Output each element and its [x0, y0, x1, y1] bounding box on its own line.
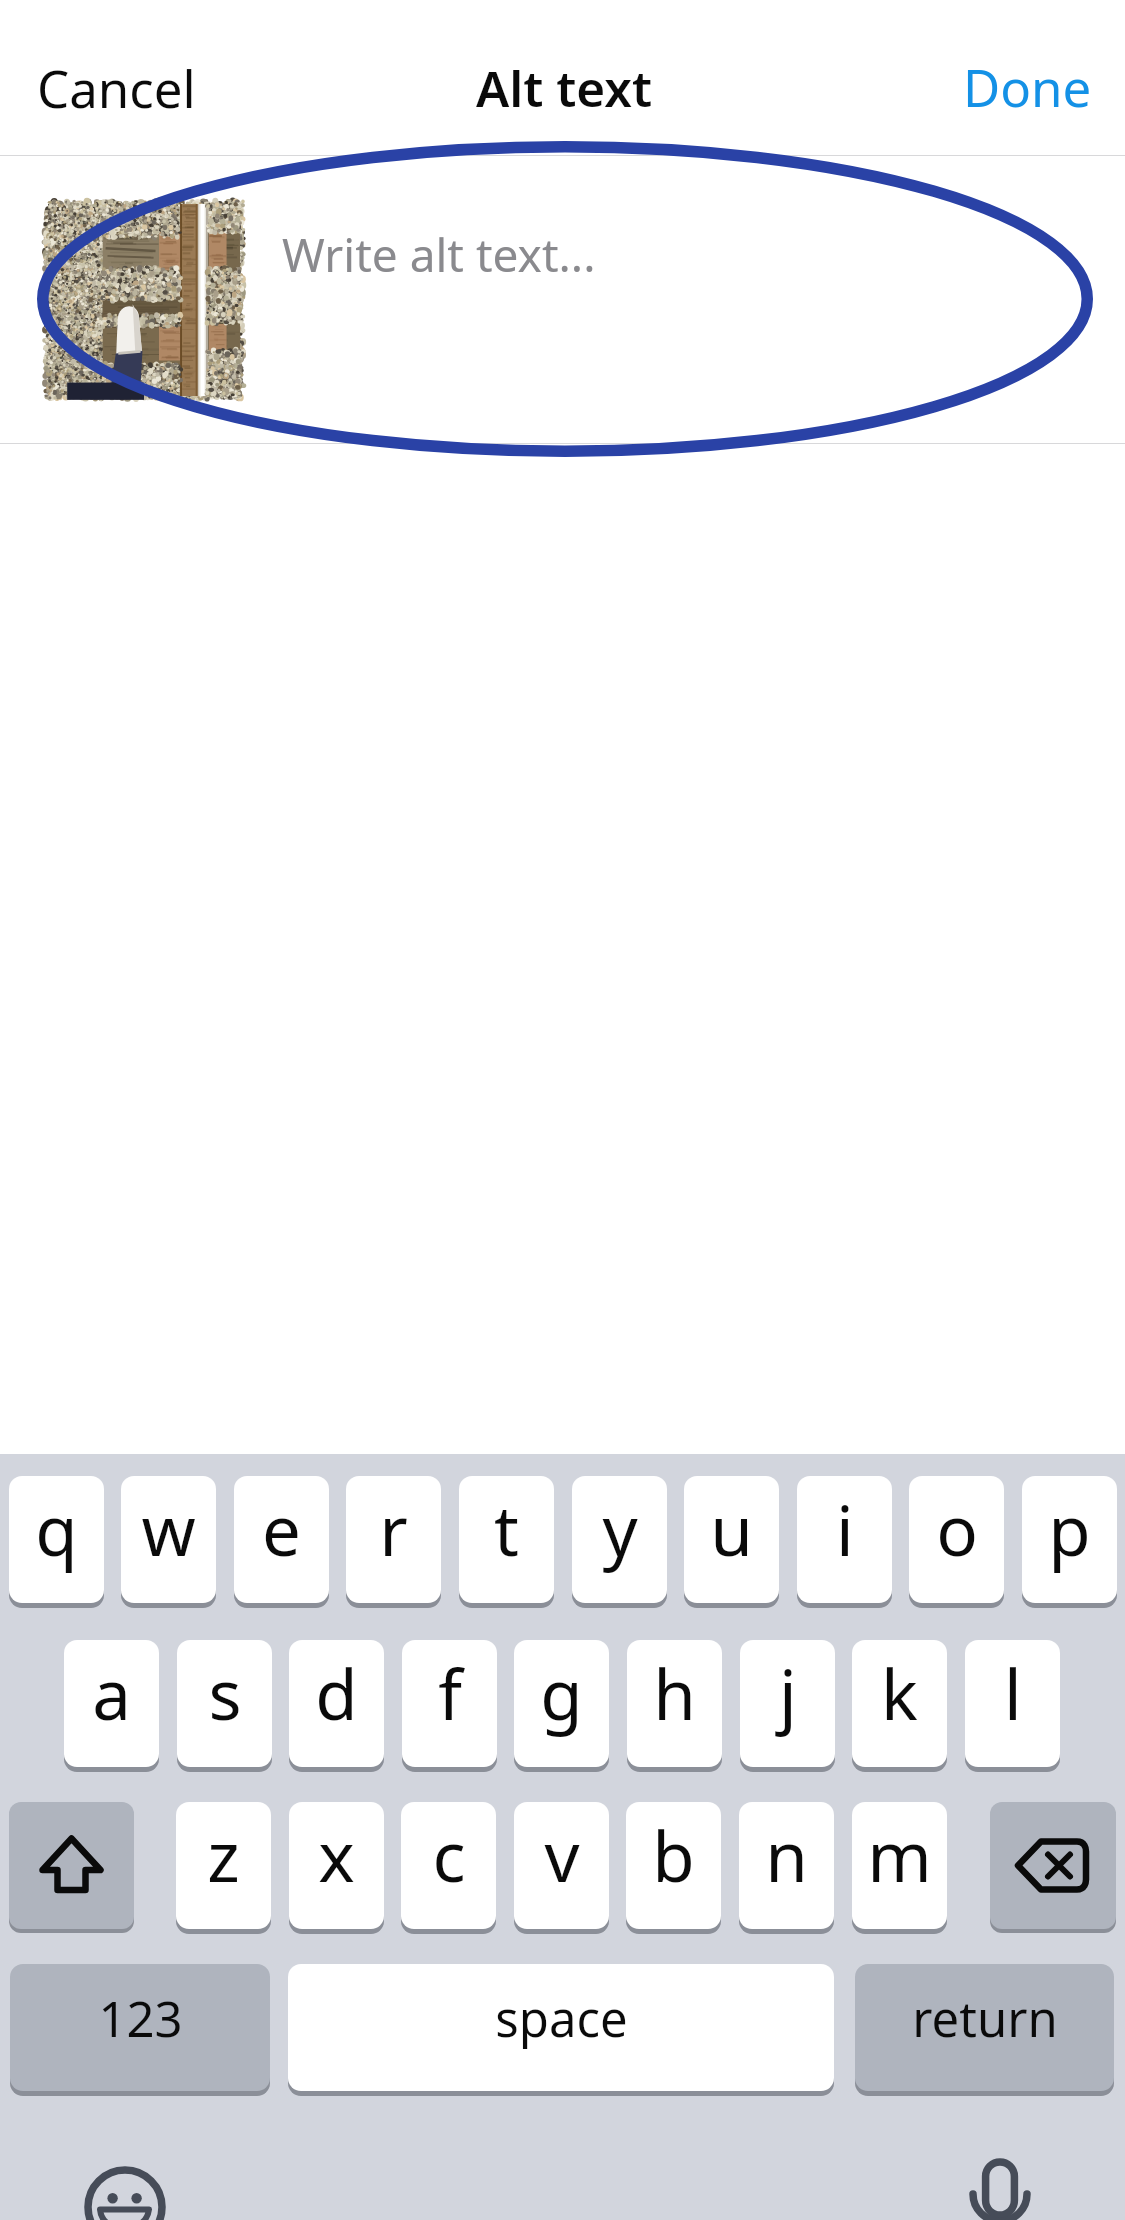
button[interactable]: Delete — [990, 1802, 1116, 1933]
button[interactable]: n — [739, 1802, 834, 1934]
staticText: Write alt text... — [282, 223, 596, 286]
staticText: m — [867, 1808, 932, 1902]
button[interactable]: Cancel — [0, 11, 239, 144]
staticText: q — [35, 1482, 78, 1576]
button[interactable]: w — [121, 1476, 216, 1608]
staticText: z — [207, 1808, 240, 1902]
button[interactable]: Selected photo — [48, 204, 240, 396]
button[interactable]: k — [852, 1640, 947, 1772]
button[interactable]: Emoji keyboard — [60, 2142, 190, 2220]
staticText: k — [881, 1646, 918, 1740]
button[interactable]: 123 — [10, 1964, 270, 2096]
button[interactable]: t — [459, 1476, 554, 1608]
button[interactable]: Shift — [9, 1802, 134, 1933]
staticText: 123 — [98, 1985, 183, 2052]
button[interactable]: Dictate — [935, 2142, 1065, 2220]
button[interactable]: z — [176, 1802, 271, 1934]
staticText: e — [262, 1482, 301, 1576]
staticText: Done — [963, 52, 1092, 121]
button[interactable]: x — [289, 1802, 384, 1934]
staticText: s — [208, 1646, 242, 1740]
button[interactable]: u — [684, 1476, 779, 1608]
staticText: n — [765, 1808, 808, 1902]
button[interactable]: return — [855, 1964, 1114, 2096]
staticText: i — [836, 1482, 854, 1576]
button[interactable]: p — [1022, 1476, 1117, 1608]
button[interactable]: e — [234, 1476, 329, 1608]
button[interactable]: Write alt text... — [260, 156, 1105, 443]
staticText: f — [438, 1646, 462, 1740]
staticText: Alt text — [476, 54, 653, 121]
button[interactable]: space — [288, 1964, 834, 2096]
staticText: j — [779, 1646, 797, 1740]
staticText: a — [92, 1646, 131, 1740]
button[interactable]: r — [346, 1476, 441, 1608]
staticText: l — [1004, 1646, 1022, 1740]
staticText: y — [602, 1482, 638, 1576]
staticText: w — [141, 1482, 196, 1576]
button[interactable]: j — [740, 1640, 835, 1772]
staticText: Cancel — [37, 53, 196, 122]
staticText: u — [710, 1482, 753, 1576]
staticText: return — [912, 1985, 1058, 2052]
button[interactable]: l — [965, 1640, 1060, 1772]
button[interactable]: o — [909, 1476, 1004, 1608]
staticText: h — [653, 1646, 696, 1740]
button[interactable]: q — [9, 1476, 104, 1608]
staticText: t — [494, 1482, 519, 1576]
staticText: b — [652, 1808, 695, 1902]
button[interactable]: h — [627, 1640, 722, 1772]
button[interactable]: Done — [924, 11, 1125, 144]
staticText: c — [432, 1808, 466, 1902]
button[interactable]: a — [64, 1640, 159, 1772]
button[interactable]: s — [177, 1640, 272, 1772]
staticText: p — [1048, 1482, 1091, 1576]
button[interactable]: d — [289, 1640, 384, 1772]
staticText: d — [315, 1646, 358, 1740]
staticText: v — [544, 1808, 580, 1902]
button[interactable]: i — [797, 1476, 892, 1608]
staticText: x — [318, 1808, 355, 1902]
button[interactable]: y — [572, 1476, 667, 1608]
staticText: o — [936, 1482, 978, 1576]
button[interactable]: c — [401, 1802, 496, 1934]
button[interactable]: g — [514, 1640, 609, 1772]
staticText: g — [540, 1646, 583, 1740]
button[interactable]: b — [626, 1802, 721, 1934]
staticText: space — [495, 1985, 628, 2052]
button[interactable]: f — [402, 1640, 497, 1772]
button[interactable]: v — [514, 1802, 609, 1934]
staticText: r — [379, 1482, 408, 1576]
button[interactable]: m — [852, 1802, 947, 1934]
